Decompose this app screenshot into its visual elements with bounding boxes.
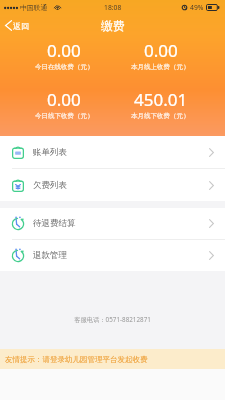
staticText: 友情提示：请登录幼儿园管理平台发起收费 xyxy=(5,355,148,364)
staticText: 返回 xyxy=(13,21,29,31)
staticText: 今日在线收费（元） xyxy=(35,63,94,71)
button[interactable]: 退款管理 xyxy=(0,240,225,271)
staticText: 欠费列表 xyxy=(33,180,67,191)
button[interactable]: 账单列表 xyxy=(0,136,225,168)
staticText: 缴费 xyxy=(101,18,125,33)
staticText: 450.01 xyxy=(134,88,188,111)
staticText: 18:08 xyxy=(104,3,122,12)
staticText: 0.00 xyxy=(144,39,178,62)
staticText: 49% xyxy=(190,3,204,12)
staticText: 0.00 xyxy=(47,39,81,62)
staticText: 本月线下收费（元） xyxy=(131,112,190,120)
staticText: 0.00 xyxy=(47,88,81,111)
staticText: 客服电话：0571-88212871 xyxy=(0,315,225,324)
staticText: 账单列表 xyxy=(33,147,67,158)
staticText: 退款管理 xyxy=(33,250,67,261)
staticText: 今日线下收费（元） xyxy=(35,112,94,120)
button[interactable]: 返回 xyxy=(0,17,35,34)
staticText: 本月线上收费（元） xyxy=(131,63,190,71)
button[interactable]: 待退费结算 xyxy=(0,208,225,239)
button[interactable]: 欠费列表 xyxy=(0,169,225,201)
staticText: 中国联通 xyxy=(20,3,48,12)
staticText: 待退费结算 xyxy=(33,218,76,229)
